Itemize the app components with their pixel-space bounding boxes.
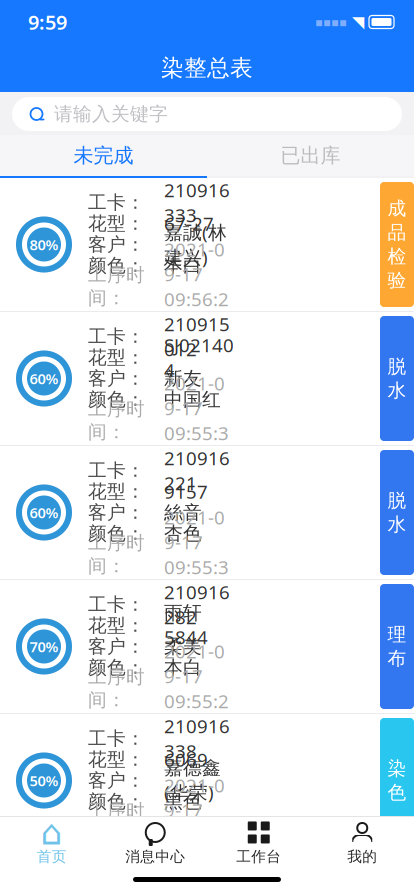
staticText: 花型： xyxy=(88,614,145,637)
staticText: 布 xyxy=(387,647,406,670)
staticText: 2021-09-17 09:56:22 xyxy=(164,237,229,336)
staticText: 210915012 xyxy=(164,312,230,361)
staticText: 柔美 xyxy=(164,635,202,658)
staticText: 2021-09-17 09:55:38 xyxy=(164,371,229,470)
button[interactable]: 我的 xyxy=(310,818,414,868)
staticText: 中国红 xyxy=(164,388,221,411)
staticText: 请输入关键字 xyxy=(54,102,168,125)
staticText: 验 xyxy=(387,269,406,292)
staticText: 客户： xyxy=(88,501,145,524)
staticText: 颜色： xyxy=(88,254,145,277)
staticText: 新友 xyxy=(164,367,202,390)
staticText: 2021-09-17 09:55:20 xyxy=(164,773,229,872)
staticText: 210916282 xyxy=(164,580,230,629)
staticText: 染整总表 xyxy=(161,54,253,82)
staticText: 工卡： xyxy=(88,727,145,750)
staticText: 颜色： xyxy=(88,522,145,545)
staticText: 客户： xyxy=(88,367,145,390)
staticText: 67-27 xyxy=(164,211,214,236)
staticText: 客户： xyxy=(88,769,145,792)
staticText: 已出库 xyxy=(280,143,340,168)
staticText: 工序时间： xyxy=(88,264,145,309)
staticText: 客户： xyxy=(88,233,145,256)
staticText: 6069 xyxy=(164,747,208,772)
staticText: 工序时间： xyxy=(88,398,145,443)
staticText: 我的 xyxy=(347,847,377,865)
staticText: 工卡： xyxy=(88,459,145,482)
button[interactable]: 70% xyxy=(0,580,414,713)
staticText: 成 xyxy=(387,197,406,220)
button[interactable]: 60% xyxy=(0,312,414,445)
staticText: 工序时间： xyxy=(88,800,145,845)
staticText: 检 xyxy=(387,245,406,268)
staticText: 工卡： xyxy=(88,191,145,214)
button[interactable]: 消息中心 xyxy=(103,818,207,868)
staticText: ◥ xyxy=(352,13,364,31)
staticText: 消息中心 xyxy=(125,847,185,865)
button[interactable]: 工作台 xyxy=(207,818,310,868)
staticText: 脱 xyxy=(387,355,406,378)
staticText: 花型： xyxy=(88,748,145,771)
staticText: 工作台 xyxy=(236,847,281,865)
staticText: 水 xyxy=(387,513,406,536)
staticText: 210916338 xyxy=(164,714,230,763)
staticText: 本白 xyxy=(164,254,202,277)
staticText: 花型： xyxy=(88,480,145,503)
staticText: 本白 xyxy=(164,656,202,679)
staticText: 客户： xyxy=(88,635,145,658)
staticText: 颜色： xyxy=(88,656,145,679)
staticText: 未完成 xyxy=(73,143,133,168)
staticText: 60% xyxy=(29,503,58,522)
staticText: 颜色： xyxy=(88,790,145,813)
staticText: 60% xyxy=(29,369,58,388)
staticText: 工序时间： xyxy=(88,532,145,577)
button[interactable]: 请输入关键字 xyxy=(12,97,402,131)
staticText: 雨轩5844 xyxy=(164,602,208,649)
button[interactable]: ⌂ xyxy=(0,818,103,868)
staticText: 工卡： xyxy=(88,593,145,616)
staticText: 颜色： xyxy=(88,388,145,411)
staticText: 50% xyxy=(29,771,58,790)
staticText: 首页 xyxy=(37,847,67,865)
staticText: 9157 xyxy=(164,479,208,504)
staticText: ▪▪▪▪ xyxy=(315,15,347,29)
staticText: SJ021404 xyxy=(164,333,234,382)
staticText: 2021-09-17 09:55:33 xyxy=(164,505,229,604)
staticText: 9:59 xyxy=(28,9,67,35)
staticText: 80% xyxy=(29,235,58,254)
staticText: 水 xyxy=(387,379,406,402)
staticText: ⌂ xyxy=(41,813,63,852)
button[interactable]: 已出库 xyxy=(207,135,414,178)
staticText: 理 xyxy=(387,623,406,646)
staticText: 染 xyxy=(387,757,406,780)
staticText: 絲音 xyxy=(164,501,202,524)
button[interactable]: 80% xyxy=(0,178,414,311)
button[interactable]: 60% xyxy=(0,446,414,579)
staticText: 工卡： xyxy=(88,325,145,348)
button[interactable]: 50% xyxy=(0,714,414,847)
staticText: 210916221 xyxy=(164,446,230,495)
staticText: 黑色 xyxy=(164,790,202,813)
staticText: 2021-09-17 09:55:27 xyxy=(164,639,229,738)
staticText: 花型： xyxy=(88,346,145,369)
staticText: 嘉誠(林建兴) xyxy=(164,220,227,269)
button[interactable]: 未完成 xyxy=(0,135,207,178)
staticText: 花型： xyxy=(88,212,145,235)
staticText: 70% xyxy=(29,637,58,656)
staticText: 杏色 xyxy=(164,522,202,545)
staticText: 脱 xyxy=(387,489,406,512)
staticText: 嘉德鑫(华荣) xyxy=(164,757,221,804)
staticText: 工序时间： xyxy=(88,666,145,711)
staticText: 品 xyxy=(387,221,406,244)
staticText: 色 xyxy=(387,781,406,804)
staticText: 210916333 xyxy=(164,178,230,227)
